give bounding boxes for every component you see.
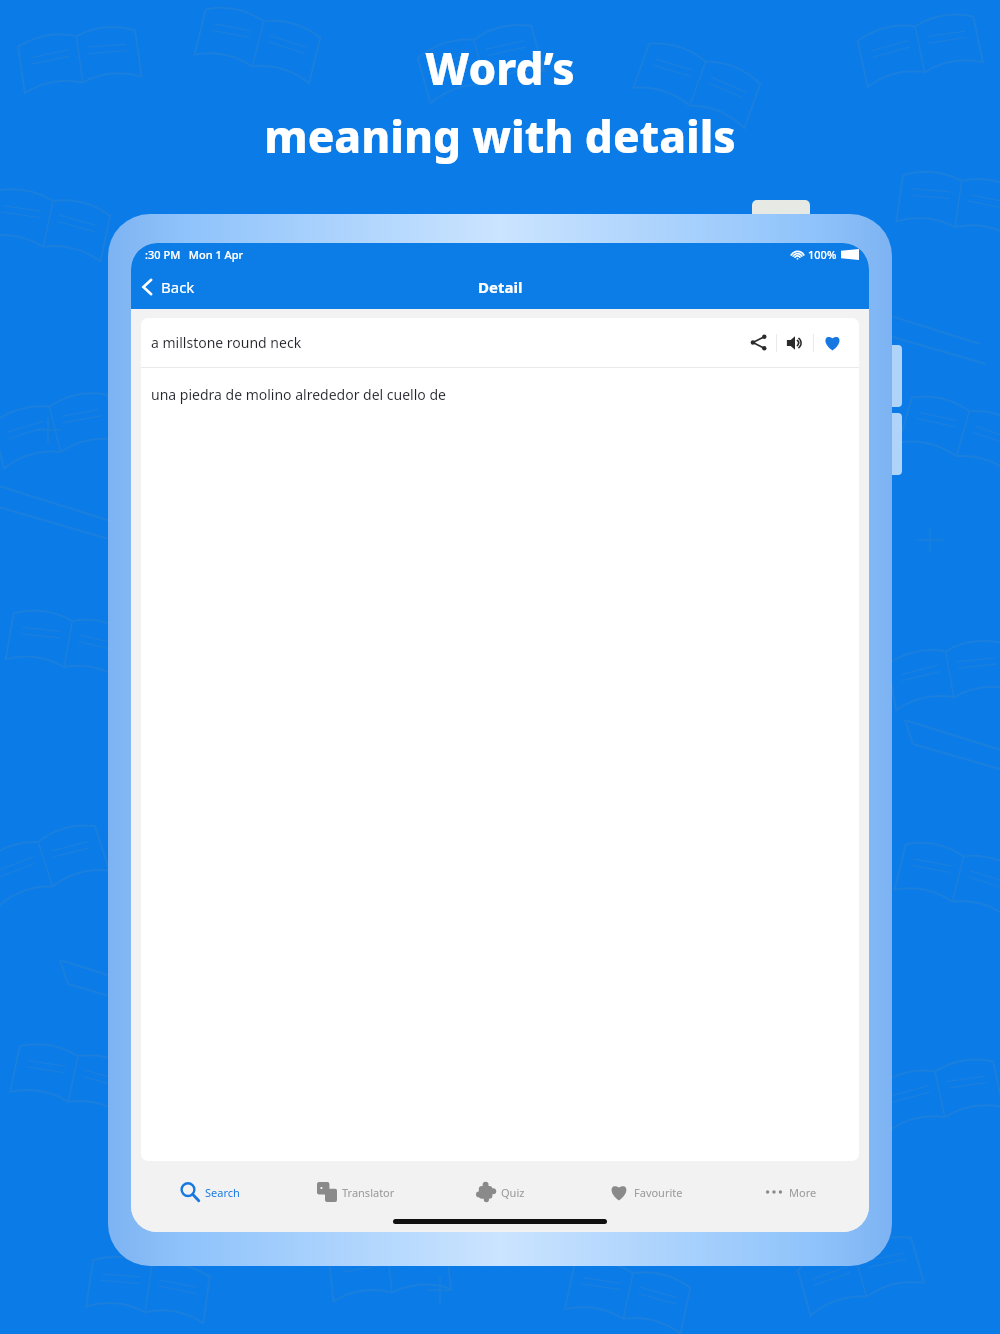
button[interactable]: Translator [283,1170,428,1214]
staticText: Search [205,1185,240,1200]
button[interactable]: Share [741,328,776,357]
staticText: a millstone round neck [151,333,302,352]
staticText: Favourite [634,1185,683,1200]
staticText: 100% [808,247,837,262]
button[interactable]: Search [137,1170,283,1214]
staticText: Quiz [501,1185,525,1200]
staticText: Word’s [425,38,575,98]
staticText: :30 PM Mon 1 Apr [145,247,244,262]
staticText: Back [161,277,195,297]
button[interactable]: Quiz [428,1170,573,1214]
button[interactable]: More [718,1170,863,1214]
staticText: meaning with details [264,106,736,166]
staticText: Detail [478,277,523,297]
staticText: Translator [342,1185,395,1200]
staticText: More [789,1185,817,1200]
button[interactable]: Speak [777,328,813,358]
button[interactable]: Back [131,271,207,303]
button[interactable]: Favourite [814,327,851,358]
button[interactable]: Favourite [573,1170,718,1214]
staticText: una piedra de molino alrededor del cuell… [151,385,446,404]
